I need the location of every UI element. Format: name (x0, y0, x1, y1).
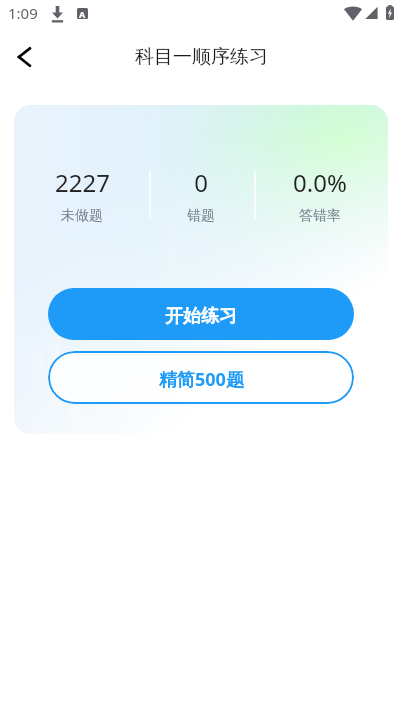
button[interactable]: 开始练习 (48, 288, 354, 340)
staticText: 未做题 (61, 207, 103, 224)
staticText: 0 (194, 166, 208, 199)
staticText: 科目一顺序练习 (135, 45, 268, 69)
staticText: 答错率 (299, 207, 341, 224)
button[interactable]: 精简500题 (48, 351, 354, 404)
staticText: 2227 (55, 166, 110, 199)
staticText: 错题 (187, 207, 215, 224)
staticText: 开始练习 (165, 305, 237, 328)
staticText: A (79, 8, 86, 19)
staticText: 1:09 (8, 3, 38, 23)
staticText: 精简500题 (159, 367, 244, 392)
staticText: 0.0% (293, 166, 347, 199)
button[interactable]: Back (3, 35, 47, 79)
